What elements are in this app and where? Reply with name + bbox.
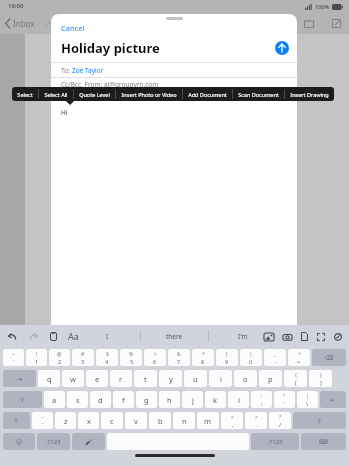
button[interactable]: *: [192, 349, 214, 366]
button[interactable]: j: [182, 391, 203, 408]
staticText: q: [47, 374, 52, 384]
button[interactable]: %: [120, 349, 142, 366]
button[interactable]: Zoe Taylor: [72, 66, 104, 75]
button[interactable]: Format: [68, 330, 79, 342]
button[interactable]: Numbers: [251, 433, 299, 450]
button[interactable]: h: [159, 391, 180, 408]
button[interactable]: b: [149, 412, 171, 429]
button[interactable]: Caps lock: [3, 391, 42, 408]
button[interactable]: Move to folder: [304, 19, 314, 28]
button[interactable]: t: [134, 370, 157, 387]
button[interactable]: #: [72, 349, 94, 366]
button[interactable]: +: [288, 349, 310, 366]
button[interactable]: Compose: [332, 19, 341, 28]
button[interactable]: I'm: [209, 332, 276, 341]
button[interactable]: Emoji: [3, 433, 35, 450]
button[interactable]: ^: [144, 349, 166, 366]
button[interactable]: e: [86, 370, 108, 387]
button[interactable]: g: [136, 391, 157, 408]
button[interactable]: $: [96, 349, 118, 366]
button[interactable]: v: [125, 412, 147, 429]
button[interactable]: Send: [275, 41, 289, 55]
button[interactable]: w: [62, 370, 84, 387]
button[interactable]: _: [264, 349, 286, 366]
button[interactable]: there: [141, 332, 208, 341]
staticText: r: [119, 374, 123, 384]
button[interactable]: Undo: [8, 332, 17, 341]
button[interactable]: s: [67, 391, 88, 408]
button[interactable]: :: [251, 391, 272, 408]
button[interactable]: Quote Level: [74, 91, 115, 98]
staticText: t: [144, 374, 147, 384]
button[interactable]: ": [274, 391, 295, 408]
button[interactable]: f: [113, 391, 134, 408]
button[interactable]: x: [78, 412, 99, 429]
button[interactable]: p: [259, 370, 282, 387]
button[interactable]: Add Document: [183, 91, 232, 98]
button[interactable]: Tab: [3, 370, 36, 387]
button[interactable]: Markup: [334, 333, 342, 341]
button[interactable]: <: [221, 412, 243, 429]
button[interactable]: I: [74, 332, 140, 341]
staticText: %: [129, 351, 134, 358]
button[interactable]: Redo: [29, 332, 38, 341]
staticText: y: [169, 374, 173, 384]
button[interactable]: Insert Drawing: [285, 91, 334, 98]
button[interactable]: Paste: [50, 332, 57, 341]
button[interactable]: |: [297, 391, 318, 408]
button[interactable]: Shift: [293, 412, 346, 429]
staticText: Aa: [68, 330, 79, 342]
button[interactable]: Return: [320, 391, 346, 408]
button[interactable]: }: [309, 370, 332, 387]
button[interactable]: @: [49, 349, 70, 366]
staticText: Insert Photo or Video: [121, 91, 177, 98]
button[interactable]: a: [44, 391, 65, 408]
button[interactable]: Select All: [39, 91, 73, 98]
button[interactable]: ): [240, 349, 262, 366]
button[interactable]: ?: [269, 412, 291, 429]
button[interactable]: n: [173, 412, 195, 429]
button[interactable]: u: [184, 370, 207, 387]
button[interactable]: y: [159, 370, 182, 387]
staticText: Hi: [61, 108, 68, 117]
button[interactable]: (: [216, 349, 238, 366]
button[interactable]: Previous: [45, 21, 54, 27]
button[interactable]: r: [110, 370, 132, 387]
button[interactable]: Dictate: [72, 433, 105, 450]
staticText: l: [238, 395, 240, 405]
button[interactable]: &: [168, 349, 190, 366]
button[interactable]: z: [55, 412, 76, 429]
button[interactable]: {: [284, 370, 307, 387]
button[interactable]: >: [245, 412, 267, 429]
button[interactable]: Add document: [301, 332, 308, 341]
button[interactable]: Cancel: [61, 23, 85, 33]
staticText: p: [268, 374, 273, 384]
button[interactable]: ~: [3, 349, 24, 366]
button[interactable]: q: [38, 370, 60, 387]
staticText: :: [261, 393, 263, 400]
button[interactable]: Scan document: [317, 333, 325, 341]
button[interactable]: k: [205, 391, 226, 408]
button[interactable]: Backspace: [312, 349, 346, 366]
button[interactable]: Hide keyboard: [301, 433, 346, 450]
button[interactable]: Scan Document: [233, 91, 284, 98]
staticText: 100%: [315, 3, 330, 10]
button[interactable]: Shift: [3, 412, 30, 429]
button[interactable]: Select: [12, 91, 38, 98]
button[interactable]: Take photo: [283, 333, 292, 341]
button[interactable]: ~: [32, 412, 53, 429]
button[interactable]: c: [101, 412, 123, 429]
button[interactable]: Numbers: [37, 433, 70, 450]
button[interactable]: i: [209, 370, 232, 387]
button[interactable]: m: [197, 412, 219, 429]
button[interactable]: d: [90, 391, 111, 408]
staticText: .?123: [268, 438, 283, 446]
button[interactable]: Insert photo: [264, 333, 274, 341]
button[interactable]: l: [228, 391, 249, 408]
button[interactable]: !: [26, 349, 47, 366]
button[interactable]: o: [234, 370, 257, 387]
button[interactable]: Insert Photo or Video: [116, 91, 182, 98]
